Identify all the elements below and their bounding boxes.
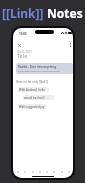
button[interactable]: Undo — [15, 169, 20, 174]
button[interactable]: Reddit - Dive into anything — [16, 63, 73, 74]
staticText: With Android, hello long — [19, 88, 49, 92]
staticText: Here is the only [[link]] — [16, 80, 48, 84]
staticText: [[Link]] — [2, 5, 44, 21]
button[interactable]: Italic — [37, 169, 42, 174]
button[interactable]: List — [51, 169, 56, 174]
staticText: Well suggested joy — [19, 105, 45, 109]
button[interactable]: Checkbox — [59, 169, 64, 174]
staticText: Notes — [47, 5, 83, 21]
button[interactable]: Bold — [30, 169, 35, 174]
staticText: Reddit - Dive into anything — [18, 65, 57, 69]
button[interactable]: Redo — [22, 169, 27, 174]
button[interactable]: Well suggested joy — [18, 104, 46, 109]
staticText: would be that I suggest — [24, 96, 54, 100]
button[interactable]: More options — [66, 41, 73, 49]
staticText: Title — [17, 53, 27, 60]
button[interactable]: With Android, hello long — [18, 87, 49, 92]
button[interactable]: Image — [66, 169, 71, 174]
staticText: 10:05 — [19, 32, 27, 36]
staticText: Oct 4, 2021 — [17, 50, 32, 54]
button[interactable]: Link — [44, 169, 49, 174]
button[interactable]: Close — [15, 41, 23, 49]
staticText: https://www.reddit.com/r/androiddev/comm — [18, 70, 60, 73]
button[interactable]: would be that I suggest — [23, 95, 54, 100]
